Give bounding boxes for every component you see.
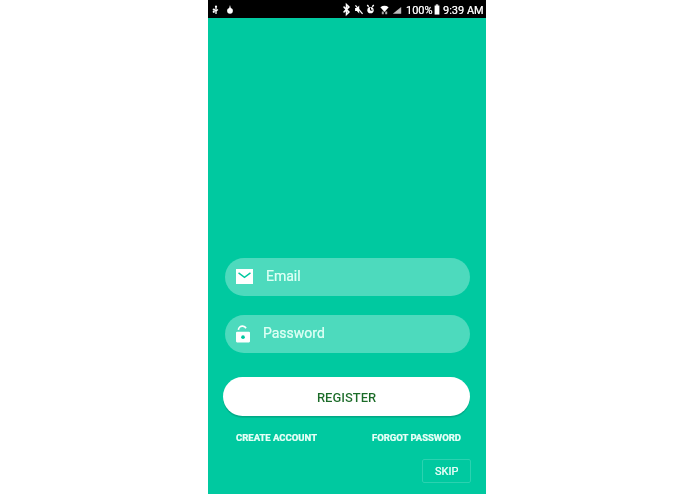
other: Password — [236, 325, 250, 344]
other: Email — [236, 269, 253, 284]
staticText: REGISTER — [317, 390, 377, 405]
staticText: 9:39 AM — [443, 4, 484, 17]
button[interactable]: REGISTER — [223, 377, 470, 416]
button[interactable]: SKIP — [422, 459, 471, 483]
button[interactable]: CREATE ACCOUNT — [226, 426, 328, 449]
staticText: FORGOT PASSWORD — [372, 432, 461, 443]
button[interactable]: Password — [225, 315, 470, 353]
staticText: CREATE ACCOUNT — [236, 432, 318, 443]
staticText: Email — [266, 268, 301, 284]
staticText: 100% — [406, 4, 433, 17]
button[interactable]: Email — [225, 258, 470, 296]
staticText: Password — [263, 325, 325, 341]
staticText: SKIP — [435, 465, 459, 478]
button[interactable]: FORGOT PASSWORD — [362, 426, 471, 449]
